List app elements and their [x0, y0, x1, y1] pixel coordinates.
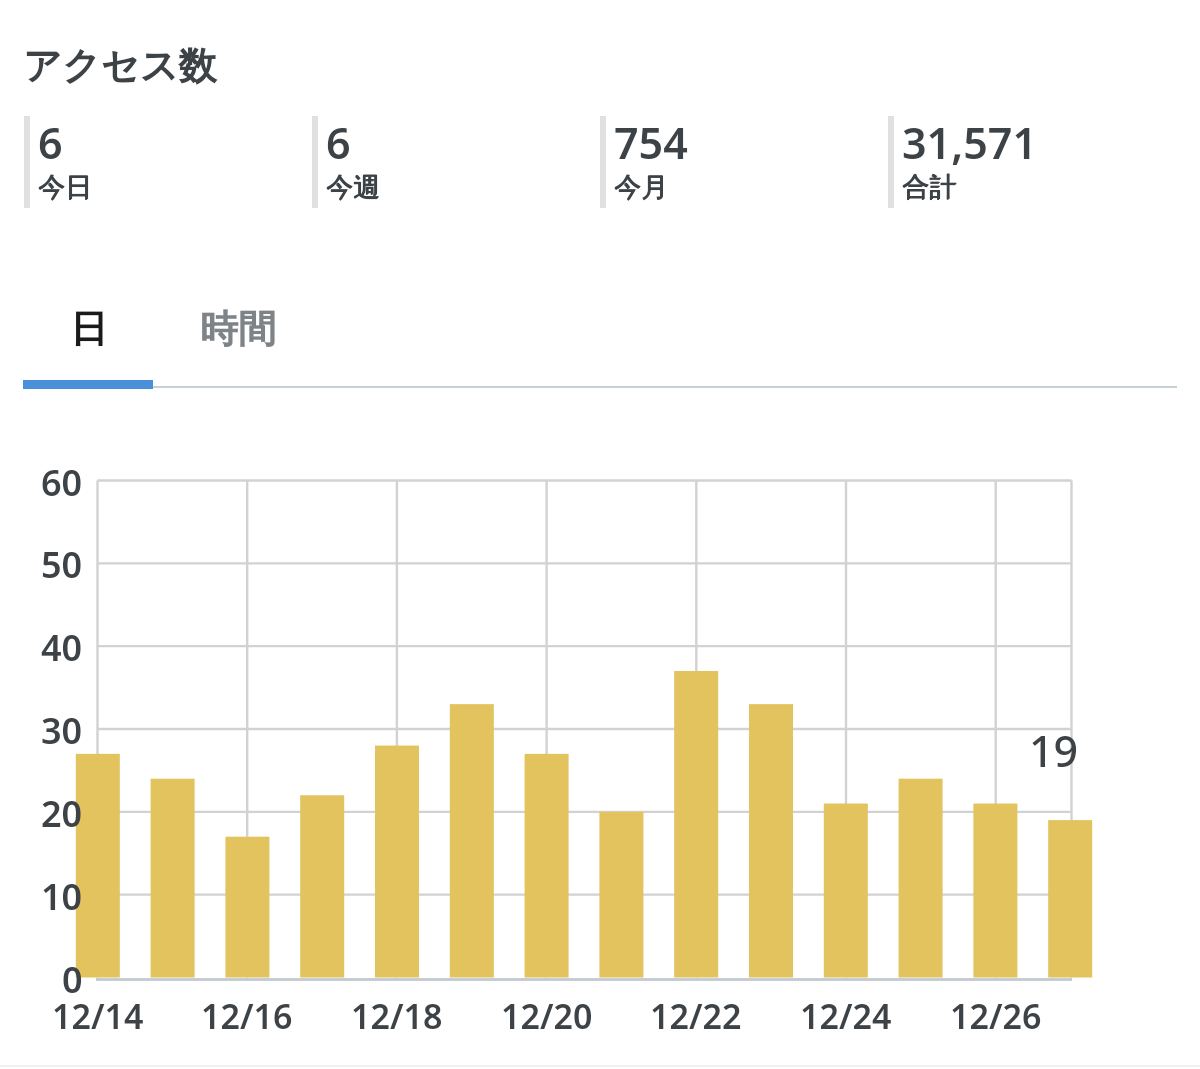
staticText: アクセス数: [23, 42, 217, 90]
staticText: 12/26: [950, 993, 1042, 1039]
staticText: 今日: [38, 170, 92, 204]
staticText: 30: [41, 706, 83, 755]
button[interactable]: 754: [600, 116, 888, 208]
staticText: 50: [41, 540, 83, 589]
staticText: 今日: [39, 170, 93, 204]
staticText: 10: [41, 872, 83, 921]
button[interactable]: 6: [312, 116, 600, 208]
staticText: 合計: [903, 170, 957, 204]
staticText: 20: [41, 789, 83, 838]
staticText: 今週: [327, 170, 381, 204]
button[interactable]: 日: [24, 296, 153, 380]
staticText: 0: [62, 955, 83, 1004]
staticText: 12/22: [650, 993, 742, 1039]
button[interactable]: 6: [24, 116, 312, 208]
button[interactable]: 31,571: [888, 116, 1176, 208]
staticText: 6: [38, 113, 63, 172]
staticText: 今月: [614, 171, 668, 205]
staticText: 日: [70, 305, 108, 353]
staticText: 6: [326, 113, 351, 172]
staticText: 今月: [615, 170, 669, 204]
staticText: 今週: [326, 171, 380, 205]
staticText: 19: [1029, 721, 1079, 780]
staticText: 12/18: [351, 993, 443, 1039]
staticText: 12/20: [501, 993, 593, 1039]
staticText: 40: [41, 623, 83, 672]
staticText: 60: [41, 458, 83, 507]
staticText: 合計: [902, 171, 956, 205]
staticText: 12/24: [800, 993, 892, 1039]
button[interactable]: 時間: [173, 296, 302, 380]
staticText: 時間: [200, 305, 276, 353]
staticText: 12/16: [201, 993, 293, 1039]
staticText: 754: [614, 113, 688, 172]
staticText: 12/14: [52, 993, 144, 1039]
staticText: 今月: [614, 170, 668, 204]
staticText: 合計: [902, 170, 956, 204]
staticText: 今週: [326, 170, 380, 204]
staticText: 今日: [38, 171, 92, 205]
staticText: 31,571: [902, 113, 1037, 172]
